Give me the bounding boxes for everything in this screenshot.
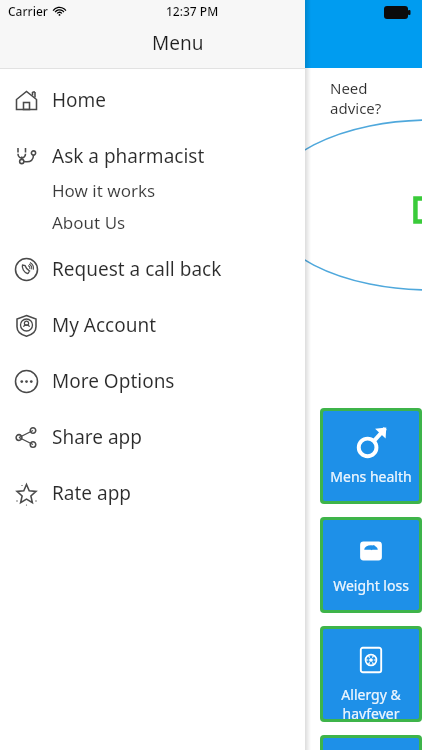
button[interactable]: Ask a pharmacist <box>0 138 305 174</box>
staticText: Need advice? <box>330 78 422 118</box>
button[interactable]: Weight loss <box>323 520 419 610</box>
staticText: My Account <box>52 312 157 338</box>
staticText: Home <box>52 87 107 113</box>
staticText: Menu <box>152 30 204 56</box>
staticText: Mens health <box>330 467 412 486</box>
button[interactable]: Share app <box>0 419 305 455</box>
staticText: More Options <box>52 368 175 394</box>
button[interactable]: Rate app <box>0 475 305 511</box>
staticText: Request a call back <box>52 256 222 282</box>
button[interactable]: More Options <box>0 363 305 399</box>
staticText: How it works <box>52 179 156 202</box>
button[interactable]: Allergy & hayfever <box>323 629 419 719</box>
button[interactable]: Request a call back <box>0 251 305 287</box>
button[interactable]: About Us <box>0 206 305 238</box>
button[interactable]: Home <box>0 82 305 118</box>
staticText: Carrier <box>8 3 48 19</box>
button[interactable]: How it works <box>0 174 305 206</box>
button[interactable]: Stop smoking <box>323 738 419 750</box>
staticText: Rate app <box>52 480 132 506</box>
button[interactable]: My Account <box>0 307 305 343</box>
staticText: 12:37 PM <box>166 3 219 19</box>
staticText: About Us <box>52 211 126 234</box>
button[interactable]: Mens health <box>323 411 419 501</box>
staticText: Ask a pharmacist <box>52 143 205 169</box>
staticText: Weight loss <box>333 576 409 595</box>
staticText: Allergy & hayfever <box>323 685 419 719</box>
staticText: Share app <box>52 424 142 450</box>
